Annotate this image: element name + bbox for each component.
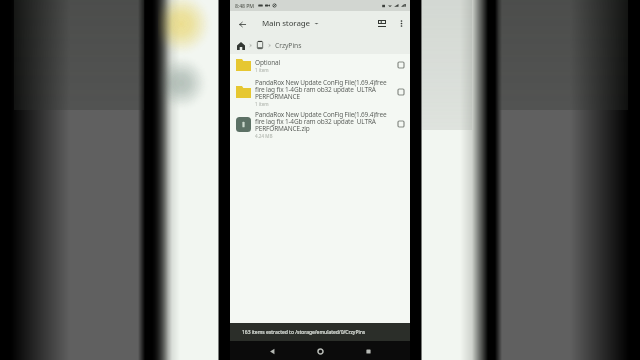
button[interactable]: Select item [395,118,407,130]
staticText: PandaRox New Update ConFig File(1.69.4)f… [255,110,391,133]
button[interactable]: Change view [370,12,393,35]
button[interactable]: PandaRox New Update ConFig File(1.69.4)f… [230,108,410,140]
staticText: Main storage [262,18,310,29]
staticText: Optional [255,58,280,67]
staticText: PandaRox New Update ConFig File(1.69.4)f… [255,78,391,101]
button[interactable]: Optional [230,54,410,76]
button[interactable]: Recent apps [360,343,376,359]
staticText: CrzyPins [275,41,302,50]
button[interactable]: Back [264,343,280,359]
button[interactable]: Select item [395,59,407,71]
button[interactable]: More options [393,15,410,32]
button[interactable]: Internal storage [255,40,265,50]
button[interactable]: PandaRox New Update ConFig File(1.69.4)f… [230,76,410,108]
staticText: 4.24 MB [255,133,273,139]
staticText: 1 item [255,67,269,73]
button[interactable]: Navigate up [230,12,254,36]
staticText: 8:48 PM [235,2,254,9]
button[interactable]: Main storage [262,18,319,29]
button[interactable]: Select item [395,86,407,98]
button[interactable]: Home [312,343,328,359]
staticText: 163 items extracted to /storage/emulated… [242,329,366,336]
button[interactable]: Home [235,40,246,51]
staticText: 1 item [255,101,269,107]
button[interactable]: CrzyPins [275,41,302,50]
